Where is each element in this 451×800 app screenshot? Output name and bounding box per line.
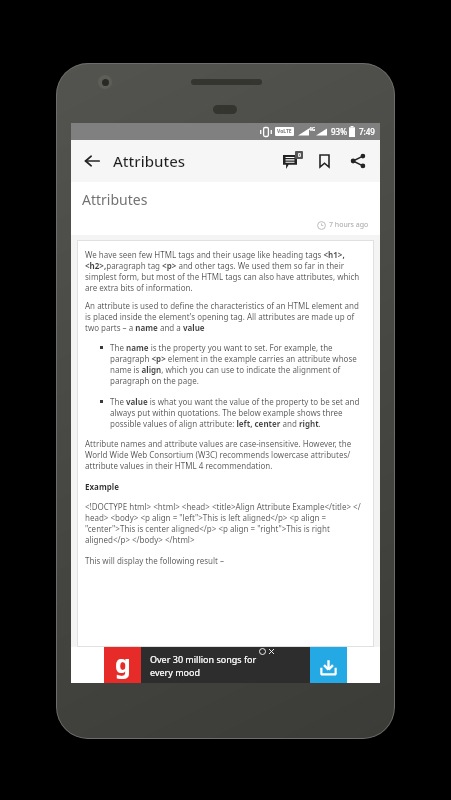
staticText: every mood — [150, 666, 201, 678]
button[interactable]: Comments — [273, 144, 307, 178]
staticText: This will display the following result – — [85, 555, 224, 566]
staticText: <!DOCTYPE html> <html> <head> <title>Ali… — [85, 501, 365, 545]
button[interactable]: Back — [71, 140, 113, 182]
staticText: VoLTE — [277, 128, 292, 135]
staticText: Attribute names and attribute values are… — [85, 438, 365, 471]
staticText: 4G — [309, 126, 316, 133]
staticText: 7:49 — [359, 126, 375, 137]
button[interactable]: Share — [341, 144, 375, 178]
staticText: An attribute is used to define the chara… — [85, 300, 365, 333]
staticText: 93% — [331, 126, 347, 137]
staticText: We have seen few HTML tags and their usa… — [85, 249, 365, 293]
staticText: 0 — [298, 152, 301, 159]
staticText: The value is what you want the value of … — [110, 396, 365, 429]
button[interactable]: Advertisement — [104, 647, 347, 683]
button[interactable]: Bookmark — [307, 144, 341, 178]
staticText: The name is the property you want to set… — [110, 342, 365, 386]
staticText: Attributes — [82, 190, 148, 209]
staticText: 7 hours ago — [329, 220, 369, 230]
staticText: Over 30 million songs for — [150, 653, 257, 665]
staticText: Attributes — [113, 151, 186, 171]
staticText: Example — [85, 481, 119, 492]
staticText: g — [115, 646, 131, 680]
